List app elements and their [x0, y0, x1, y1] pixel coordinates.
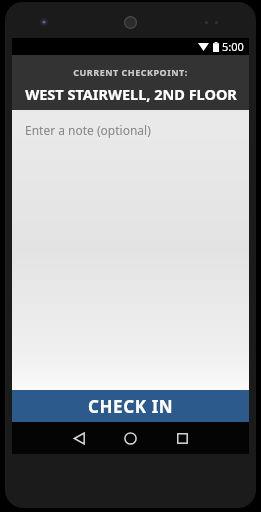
staticText: 5:00: [222, 39, 244, 54]
staticText: CHECK IN: [88, 395, 174, 418]
staticText: CURRENT CHECKPOINT:: [73, 66, 188, 78]
staticText: Enter a note (optional): [25, 122, 151, 138]
button[interactable]: Recent apps: [159, 422, 205, 454]
button[interactable]: Back: [56, 422, 102, 454]
button[interactable]: Home: [107, 422, 153, 454]
button[interactable]: CHECK IN: [12, 390, 249, 422]
staticText: WEST STAIRWELL, 2ND FLOOR: [25, 84, 237, 104]
button[interactable]: Enter a note (optional): [12, 110, 249, 390]
